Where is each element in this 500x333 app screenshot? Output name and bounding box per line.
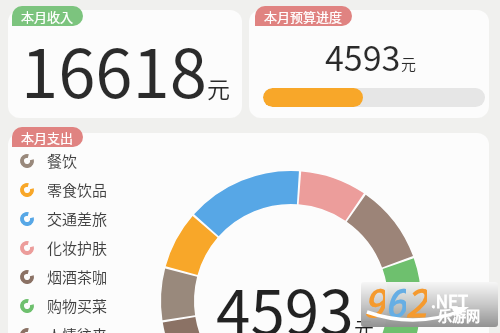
staticText: 本月预算进度 [264, 7, 343, 26]
staticText: 餐饮 [47, 150, 78, 172]
button[interactable]: 人情往来 [20, 320, 108, 333]
button[interactable]: 餐饮 [20, 146, 78, 175]
staticText: 本月收入 [21, 7, 74, 26]
staticText: 交通差旅 [47, 208, 108, 230]
staticText: 2 [406, 282, 427, 319]
staticText: 元 [401, 53, 417, 75]
button[interactable]: 本月支出 [12, 127, 83, 147]
staticText: 元 [354, 314, 374, 333]
staticText: 化妆护肤 [47, 237, 108, 259]
button[interactable]: 零食饮品 [20, 175, 108, 204]
staticText: 本月支出 [21, 128, 74, 147]
button[interactable]: 烟酒茶咖 [20, 262, 108, 291]
staticText: 6 [385, 282, 406, 319]
button[interactable]: 化妆护肤 [20, 233, 108, 262]
button[interactable]: 本月预算进度 [255, 6, 352, 26]
staticText: 烟酒茶咖 [47, 266, 108, 288]
staticText: 4593 [325, 32, 401, 81]
button[interactable]: 16618 [8, 10, 242, 118]
button[interactable]: 本月收入 [12, 6, 83, 26]
staticText: 4593 [216, 263, 354, 333]
staticText: 乐游网 [438, 305, 480, 325]
button[interactable]: 餐饮 [8, 133, 489, 333]
staticText: .NET [431, 288, 469, 313]
staticText: 16618 [21, 20, 207, 117]
staticText: 零食饮品 [47, 179, 108, 201]
button[interactable]: 交通差旅 [20, 204, 108, 233]
staticText: 9 [364, 282, 385, 319]
button[interactable]: 4593 [249, 10, 489, 118]
button[interactable]: 购物买菜 [20, 291, 108, 320]
staticText: 购物买菜 [47, 295, 108, 317]
staticText: 元 [207, 71, 230, 104]
staticText: 人情往来 [47, 324, 108, 333]
